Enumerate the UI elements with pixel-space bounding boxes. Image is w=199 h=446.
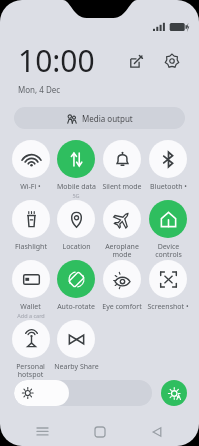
- button[interactable]: Media output: [14, 107, 185, 129]
- staticText: Bluetooth •: [150, 182, 187, 192]
- staticText: Silent mode: [102, 182, 142, 192]
- staticText: Device controls: [155, 242, 182, 259]
- button[interactable]: Eye comfort: [99, 260, 145, 320]
- staticText: Wi-Fi •: [20, 182, 41, 192]
- button[interactable]: Wi-Fi •: [8, 140, 53, 200]
- staticText: 5G: [72, 192, 80, 199]
- button[interactable]: Edit quick settings: [123, 48, 149, 74]
- button[interactable]: Brightness: [14, 380, 152, 406]
- staticText: Mon, 4 Dec: [18, 84, 61, 95]
- button[interactable]: Flashlight: [8, 200, 53, 260]
- staticText: Flashlight: [15, 242, 47, 252]
- button[interactable]: Settings: [159, 48, 185, 74]
- button[interactable]: Screenshot •: [145, 260, 191, 320]
- button[interactable]: Mobile data: [53, 140, 99, 200]
- button[interactable]: Wallet: [8, 260, 53, 320]
- staticText: Personal hotspot: [16, 362, 45, 379]
- button[interactable]: Location: [53, 200, 99, 260]
- staticText: Aeroplane mode: [105, 242, 139, 259]
- button[interactable]: Nearby Share: [53, 320, 99, 380]
- button[interactable]: Silent mode: [99, 140, 145, 200]
- staticText: Eye comfort: [102, 302, 142, 312]
- staticText: 10:00: [18, 40, 95, 81]
- button[interactable]: Bluetooth •: [145, 140, 191, 200]
- staticText: Mobile data: [57, 182, 96, 192]
- staticText: Auto-rotate: [57, 302, 95, 312]
- staticText: Media output: [82, 113, 133, 124]
- staticText: Add a card: [17, 312, 45, 319]
- staticText: Location: [62, 242, 91, 252]
- staticText: Wallet: [20, 302, 41, 312]
- staticText: Nearby Share: [54, 362, 99, 372]
- button[interactable]: Auto brightness: [161, 380, 187, 406]
- button[interactable]: Device controls: [145, 200, 191, 260]
- button[interactable]: Home: [85, 418, 115, 446]
- button[interactable]: Aeroplane mode: [99, 200, 145, 260]
- button[interactable]: Personal hotspot: [8, 320, 53, 380]
- button[interactable]: Back: [142, 418, 172, 446]
- button[interactable]: Auto-rotate: [53, 260, 99, 320]
- button[interactable]: Recents: [27, 418, 57, 446]
- staticText: Screenshot •: [147, 302, 189, 312]
